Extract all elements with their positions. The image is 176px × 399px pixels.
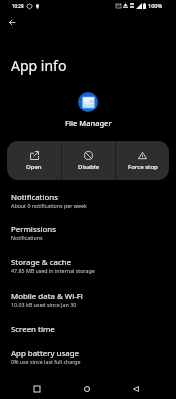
staticText: Disable [78,163,100,171]
staticText: App battery usage [11,348,79,359]
button[interactable]: Back [2,12,22,32]
button[interactable]: Screen time [0,318,176,341]
button[interactable]: Notifications [0,185,176,217]
staticText: File Manager [65,118,112,128]
staticText: Screen time [11,324,55,335]
staticText: Force stop [128,163,158,171]
staticText: About 0 notifications per week [11,202,87,209]
button[interactable]: Recents [26,378,47,399]
staticText: Open [26,163,42,171]
staticText: 10:28 [12,3,24,9]
staticText: Permissions [11,224,56,235]
staticText: Storage & cache [11,257,71,268]
staticText: Notifications [11,234,43,241]
button[interactable]: Open [7,141,61,180]
button[interactable]: Mobile data & Wi-Fi [0,283,176,317]
button[interactable]: App battery usage [0,340,176,373]
staticText: 100% [148,2,163,9]
button[interactable]: Storage & cache [0,249,176,283]
button[interactable]: Home [76,378,97,399]
staticText: 10.03 kB used since Jan 30 [11,301,77,308]
staticText: Notifications [11,192,58,203]
button[interactable]: Disable [62,141,115,180]
button[interactable]: Permissions [0,216,176,249]
staticText: App info [11,56,67,75]
staticText: Mobile data & Wi-Fi [11,291,83,302]
button[interactable]: Back [125,378,146,399]
staticText: 0% use since last full charge [11,358,81,365]
button[interactable]: Force stop [116,141,169,180]
staticText: 47.85 MB used in internal storage [11,267,95,274]
